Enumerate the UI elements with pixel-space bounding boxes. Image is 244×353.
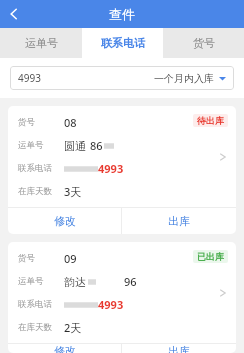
- button[interactable]: 运单号: [0, 28, 82, 58]
- staticText: 08: [64, 115, 77, 130]
- staticText: 韵达: [64, 275, 86, 289]
- staticText: 查件: [109, 6, 135, 22]
- staticText: 86: [90, 138, 103, 153]
- button[interactable]: 货号: [8, 106, 236, 207]
- staticText: 在库天数: [18, 322, 52, 333]
- button[interactable]: 货号: [163, 28, 244, 58]
- staticText: 运单号: [18, 140, 44, 151]
- button[interactable]: 出库: [122, 208, 236, 234]
- staticText: 修改: [54, 214, 76, 228]
- staticText: 在库天数: [18, 186, 52, 197]
- button[interactable]: 联系电话: [82, 28, 163, 58]
- button[interactable]: Back: [0, 0, 28, 28]
- staticText: 货号: [18, 117, 35, 128]
- staticText: 09: [64, 251, 77, 266]
- staticText: 修改: [54, 344, 76, 353]
- button[interactable]: 修改: [8, 208, 121, 234]
- staticText: 2天: [64, 320, 82, 335]
- button[interactable]: 出库: [122, 344, 236, 353]
- staticText: 运单号: [25, 36, 58, 50]
- staticText: 联系电话: [18, 163, 52, 174]
- staticText: 货号: [18, 253, 35, 264]
- staticText: 一个月内入库: [154, 72, 214, 85]
- staticText: 已出库: [197, 251, 224, 262]
- button[interactable]: 修改: [8, 344, 121, 353]
- staticText: 4993: [98, 297, 124, 312]
- staticText: 联系电话: [18, 299, 52, 310]
- button[interactable]: 4993: [10, 66, 154, 90]
- staticText: 出库: [168, 214, 190, 228]
- staticText: 96: [124, 274, 137, 289]
- staticText: 3天: [64, 184, 82, 199]
- staticText: 运单号: [18, 276, 44, 287]
- staticText: 联系电话: [101, 36, 145, 50]
- staticText: 圆通: [64, 139, 86, 153]
- staticText: 4993: [98, 161, 124, 176]
- staticText: 待出库: [197, 115, 224, 126]
- staticText: 出库: [168, 344, 190, 353]
- button[interactable]: 一个月内入库: [154, 66, 234, 90]
- button[interactable]: 货号: [8, 242, 236, 343]
- staticText: 4993: [18, 71, 41, 85]
- staticText: 货号: [193, 36, 215, 50]
